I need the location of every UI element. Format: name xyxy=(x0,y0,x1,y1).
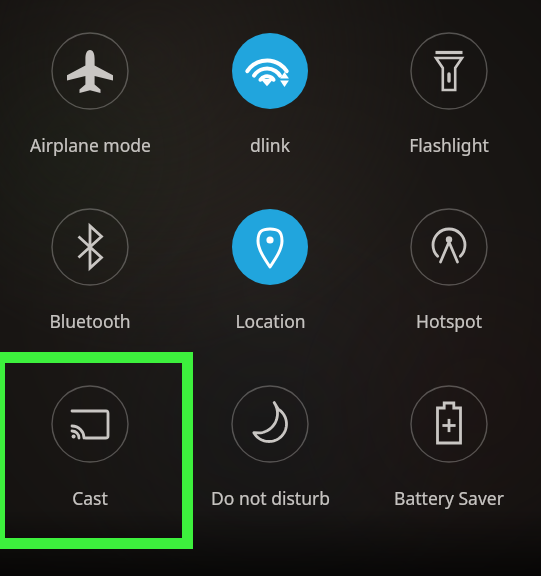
staticText: Bluetooth xyxy=(49,309,131,333)
button[interactable]: dlink xyxy=(182,5,358,131)
staticText: Flashlight xyxy=(409,133,489,157)
staticText: dlink xyxy=(250,133,290,157)
button[interactable]: Location xyxy=(182,181,358,307)
staticText: Hotspot xyxy=(416,309,482,333)
button[interactable]: Cast xyxy=(2,358,178,484)
staticText: Cast xyxy=(72,486,108,510)
staticText: Battery Saver xyxy=(394,486,504,510)
staticText: Airplane mode xyxy=(30,133,151,157)
button[interactable]: Hotspot xyxy=(361,181,537,307)
button[interactable]: Do not disturb xyxy=(182,358,358,484)
button[interactable]: Flashlight xyxy=(361,5,537,131)
button[interactable]: Battery Saver xyxy=(361,358,537,484)
button[interactable]: Bluetooth xyxy=(2,181,178,307)
staticText: Do not disturb xyxy=(211,486,330,510)
button[interactable]: Airplane mode xyxy=(2,5,178,131)
staticText: Location xyxy=(235,309,306,333)
